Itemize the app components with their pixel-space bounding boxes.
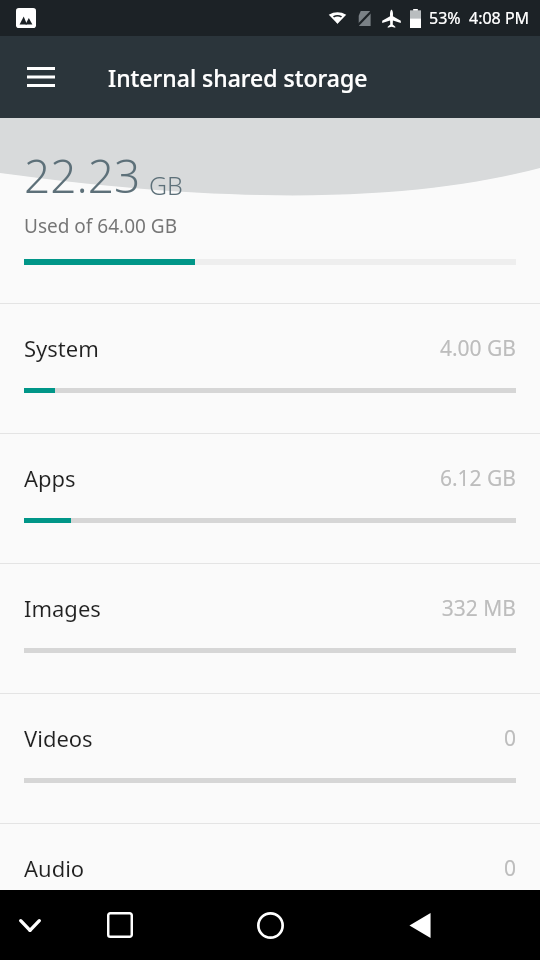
staticText: Videos [24,723,93,753]
staticText: System [24,333,99,363]
staticText: Audio [24,853,85,883]
staticText: 0 [503,854,516,883]
staticText: 332 MB [441,594,516,623]
staticText: Images [24,593,101,623]
button[interactable]: Apps [0,434,540,563]
button[interactable]: Recent apps [96,901,144,949]
button[interactable]: Videos [0,694,540,823]
button[interactable]: Hide [6,901,54,949]
button[interactable]: Audio [0,824,540,890]
button[interactable]: Open navigation drawer [10,46,72,108]
button[interactable]: System [0,304,540,433]
staticText: 53% [429,7,461,29]
staticText: Apps [24,463,76,493]
staticText: Used of 64.00 GB [24,213,177,239]
staticText: GB [149,168,183,202]
staticText: 22.23 [24,144,141,207]
button[interactable]: Images [0,564,540,693]
staticText: 4:08 PM [469,7,530,29]
button[interactable]: Home [246,901,294,949]
staticText: 4.00 GB [439,334,516,363]
staticText: Internal shared storage [108,62,368,93]
staticText: 6.12 GB [439,464,516,493]
staticText: 0 [503,724,516,753]
button[interactable]: Back [396,901,444,949]
